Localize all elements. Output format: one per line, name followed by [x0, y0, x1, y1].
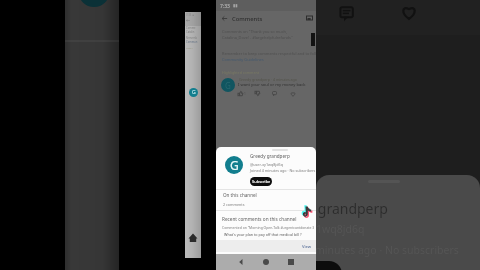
button[interactable]: Home	[263, 259, 269, 265]
button[interactable]: 1	[238, 91, 246, 96]
staticText: 2 comments	[223, 202, 245, 207]
staticText: Comments	[232, 15, 263, 23]
staticText: Remember to keep comments respectful and…	[222, 51, 316, 56]
staticText: Comme Catalin	[186, 26, 196, 34]
staticText: Rememb	[186, 36, 197, 40]
button[interactable]: Community Guidelines	[222, 57, 264, 62]
staticText: G	[230, 157, 239, 173]
button[interactable]: Back	[216, 11, 232, 26]
staticText: On this channel	[223, 192, 257, 198]
staticText: Greedy grandperp · 4 minutes ago	[239, 77, 297, 82]
staticText: Highlighted comment	[222, 70, 259, 75]
button[interactable]: Back	[238, 259, 244, 265]
button[interactable]: Heart	[290, 91, 296, 97]
button[interactable]: Subscribe	[250, 177, 272, 186]
staticText: ←	[186, 17, 191, 23]
staticText: 7:33 ▪	[186, 13, 195, 17]
button[interactable]: Comments	[338, 4, 358, 24]
staticText: Joined 4 minutes ago · No subscribers	[250, 168, 316, 173]
button[interactable]: Sort comments	[302, 11, 316, 26]
staticText: Subscribe	[252, 179, 271, 184]
button[interactable]: Dislike	[255, 91, 260, 96]
staticText: Highli	[186, 46, 193, 49]
staticText: Comments on "Thank you so much, Catalina…	[222, 29, 293, 40]
staticText: ▮▮	[233, 3, 238, 8]
staticText: 7:33	[220, 3, 230, 10]
staticText: What's your plan to pay off that medical…	[224, 232, 302, 237]
staticText: I want your soul or my money back	[238, 82, 306, 88]
staticText: y grandperp	[316, 199, 388, 218]
staticText: Commented on "Morning Open-Talk #urgentc…	[222, 225, 315, 230]
staticText: G	[225, 80, 231, 91]
staticText: Recent comments on this channel	[222, 216, 297, 222]
staticText: @user-xy1wq8jd6q	[250, 162, 283, 167]
button[interactable]	[292, 261, 342, 270]
staticText: Greedy grandperp	[250, 153, 290, 159]
button[interactable]: Like	[400, 3, 418, 21]
button[interactable]: View	[302, 244, 312, 250]
button[interactable]: Reply	[272, 91, 277, 96]
staticText: G	[192, 89, 196, 96]
staticText: Commun	[186, 40, 198, 44]
